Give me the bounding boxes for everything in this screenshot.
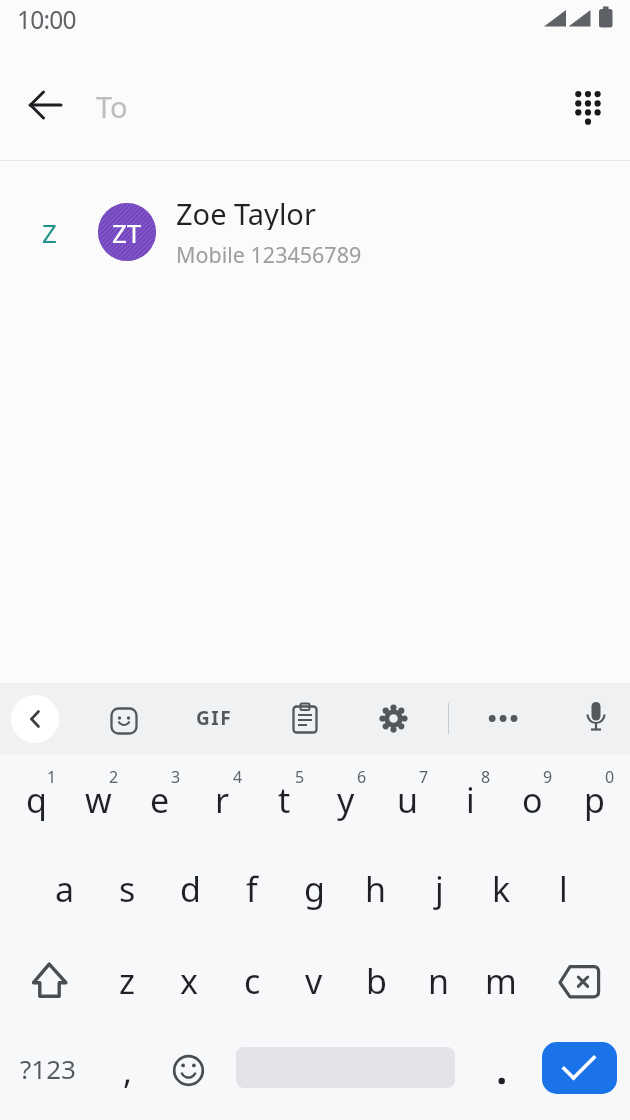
button[interactable] (480, 1050, 524, 1094)
staticText: 3 (171, 766, 181, 786)
staticText: l (559, 866, 568, 912)
button[interactable] (581, 700, 611, 738)
button[interactable]: h (345, 845, 407, 933)
staticText: 8 (481, 766, 491, 786)
staticText: u (397, 777, 419, 823)
button[interactable] (27, 958, 71, 1002)
staticText: Z (42, 215, 57, 250)
button[interactable] (542, 1042, 617, 1094)
button[interactable]: g (283, 845, 345, 933)
button[interactable]: j (408, 845, 470, 933)
staticText: z (119, 958, 135, 1004)
staticText: ZT (112, 215, 142, 250)
staticText: ?123 (20, 1051, 76, 1086)
staticText: 0 (605, 766, 615, 786)
button[interactable] (22, 81, 70, 129)
staticText: 5 (295, 766, 305, 786)
button[interactable]: r (191, 756, 253, 844)
staticText: a (55, 866, 75, 912)
staticText: k (492, 866, 511, 912)
button[interactable] (480, 706, 526, 731)
button[interactable]: d (159, 845, 221, 933)
button[interactable]: s (96, 845, 158, 933)
staticText: j (435, 866, 444, 912)
button[interactable]: z (96, 937, 158, 1025)
button[interactable]: f (221, 845, 283, 933)
staticText: 1 (47, 766, 57, 786)
staticText: x (180, 958, 198, 1004)
button[interactable] (0, 180, 630, 284)
button[interactable] (11, 695, 59, 743)
button[interactable]: c (221, 937, 283, 1025)
staticText: w (85, 777, 112, 823)
button[interactable] (556, 962, 604, 1004)
staticText: t (278, 777, 291, 823)
button[interactable]: o (501, 756, 563, 844)
staticText: Zoe Taylor (176, 194, 316, 230)
button[interactable] (291, 703, 319, 735)
staticText: Mobile 123456789 (176, 240, 362, 269)
staticText: m (485, 958, 517, 1004)
button[interactable]: i (439, 756, 501, 844)
staticText: , (123, 1048, 133, 1094)
button[interactable]: w (67, 756, 129, 844)
staticText: h (365, 866, 387, 912)
staticText: r (215, 777, 230, 823)
button[interactable]: y (315, 756, 377, 844)
button[interactable]: ?123 (8, 1038, 88, 1098)
staticText: g (304, 866, 325, 912)
staticText: 10:00 (17, 3, 76, 35)
staticText: c (244, 958, 261, 1004)
staticText: 9 (543, 766, 553, 786)
button[interactable] (171, 1053, 207, 1089)
button[interactable]: b (345, 937, 407, 1025)
staticText: b (366, 958, 387, 1004)
staticText: v (305, 958, 323, 1004)
staticText: s (119, 866, 136, 912)
button[interactable]: v (283, 937, 345, 1025)
button[interactable]: l (532, 845, 594, 933)
staticText: o (522, 777, 543, 823)
staticText: d (180, 866, 201, 912)
button[interactable]: m (470, 937, 532, 1025)
button[interactable]: e (129, 756, 191, 844)
staticText: 2 (109, 766, 119, 786)
button[interactable] (379, 704, 408, 733)
staticText: 6 (357, 766, 367, 786)
staticText: e (150, 777, 170, 823)
staticText: y (337, 777, 355, 823)
button[interactable]: k (470, 845, 532, 933)
staticText: i (466, 777, 475, 823)
button[interactable]: x (158, 937, 220, 1025)
button[interactable]: p (563, 756, 625, 844)
staticText: n (428, 958, 450, 1004)
staticText: GIF (196, 705, 233, 731)
staticText: p (584, 777, 605, 823)
staticText: q (26, 777, 47, 823)
staticText: 4 (233, 766, 243, 786)
button[interactable]: n (408, 937, 470, 1025)
button[interactable]: , (103, 1036, 153, 1106)
staticText: To (96, 87, 128, 126)
staticText: 7 (419, 766, 429, 786)
staticText: f (246, 866, 258, 912)
button[interactable]: u (377, 756, 439, 844)
button[interactable]: GIF (179, 701, 249, 735)
button[interactable]: a (34, 845, 96, 933)
button[interactable]: t (253, 756, 315, 844)
button[interactable]: q (5, 756, 67, 844)
button[interactable] (110, 707, 138, 735)
button[interactable] (560, 80, 608, 128)
